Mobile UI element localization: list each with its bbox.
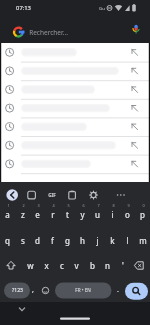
staticText: 9 <box>127 203 130 208</box>
staticText: 7 <box>97 203 100 208</box>
staticText: s <box>21 235 25 246</box>
button[interactable]: a <box>0 206 15 222</box>
button[interactable] <box>65 187 79 203</box>
button[interactable]: m <box>135 232 150 248</box>
staticText: q <box>5 235 10 246</box>
button[interactable]: n <box>100 257 115 273</box>
staticText: e <box>35 209 40 220</box>
button[interactable]: e <box>30 206 45 222</box>
button[interactable] <box>0 80 150 99</box>
button[interactable]: g <box>60 232 75 248</box>
button[interactable] <box>0 99 150 118</box>
staticText: GIF <box>48 192 56 198</box>
button[interactable]: k <box>105 232 120 248</box>
button[interactable] <box>58 313 92 323</box>
button[interactable] <box>86 187 101 203</box>
staticText: ' <box>122 260 124 271</box>
staticText: x <box>44 260 49 271</box>
staticText: ?123 <box>12 287 23 294</box>
staticText: , <box>32 285 34 295</box>
staticText: l <box>126 235 129 246</box>
button[interactable]: u <box>90 206 105 222</box>
staticText: u <box>95 209 100 220</box>
staticText: y <box>80 209 85 220</box>
button[interactable] <box>124 280 149 301</box>
staticText: m <box>139 235 147 246</box>
staticText: a <box>5 209 10 220</box>
staticText: 4 <box>52 203 55 208</box>
button[interactable]: d <box>30 232 45 248</box>
button[interactable]: f <box>45 232 60 248</box>
button[interactable]: j <box>90 232 105 248</box>
staticText: h <box>80 235 85 246</box>
staticText: 5 <box>67 203 70 208</box>
button[interactable] <box>129 252 150 278</box>
staticText: g <box>65 235 70 246</box>
button[interactable]: . <box>113 283 123 297</box>
staticText: j <box>96 235 99 246</box>
button[interactable]: p <box>135 206 150 222</box>
button[interactable] <box>0 62 150 81</box>
staticText: w <box>27 260 34 271</box>
staticText: i <box>111 209 114 220</box>
button[interactable]: x <box>39 257 54 273</box>
staticText: t <box>66 209 69 220</box>
button[interactable]: b <box>85 257 100 273</box>
staticText: d <box>35 235 40 246</box>
staticText: FR • EN <box>75 287 91 293</box>
button[interactable]: GIF <box>43 190 61 200</box>
button[interactable] <box>0 117 150 136</box>
button[interactable]: r <box>45 206 60 222</box>
button[interactable] <box>0 252 22 278</box>
button[interactable] <box>4 187 21 203</box>
button[interactable]: v <box>69 257 84 273</box>
button[interactable]: q <box>0 232 15 248</box>
staticText: v <box>74 260 79 271</box>
staticText: 2 <box>22 203 25 208</box>
button[interactable]: l <box>120 232 135 248</box>
staticText: c <box>60 260 64 271</box>
button[interactable] <box>55 280 112 300</box>
button[interactable]: Rechercher... <box>26 26 71 38</box>
button[interactable]: y <box>75 206 90 222</box>
staticText: p <box>140 209 145 220</box>
button[interactable] <box>0 136 150 155</box>
staticText: 6 <box>82 203 85 208</box>
button[interactable] <box>38 280 53 300</box>
staticText: b <box>90 260 95 271</box>
button[interactable]: i <box>105 206 120 222</box>
button[interactable]: ' <box>115 257 130 273</box>
staticText: f <box>51 235 54 246</box>
staticText: r <box>51 209 55 220</box>
button[interactable]: h <box>75 232 90 248</box>
staticText: z <box>21 209 25 220</box>
button[interactable]: s <box>15 232 30 248</box>
button[interactable] <box>25 187 39 203</box>
staticText: . <box>117 285 119 295</box>
staticText: o <box>125 209 130 220</box>
staticText: Rechercher... <box>29 28 68 37</box>
staticText: 8 <box>112 203 115 208</box>
staticText: k <box>110 235 115 246</box>
button[interactable] <box>0 155 150 174</box>
button[interactable]: t <box>60 206 75 222</box>
button[interactable]: w <box>23 257 38 273</box>
button[interactable] <box>112 187 130 203</box>
button[interactable]: ?123 <box>4 283 30 297</box>
button[interactable] <box>0 43 150 62</box>
button[interactable]: z <box>15 206 30 222</box>
staticText: n <box>105 260 110 271</box>
button[interactable]: o <box>120 206 135 222</box>
staticText: 07:13 <box>16 4 31 12</box>
button[interactable] <box>12 303 32 317</box>
staticText: 0 <box>142 203 145 208</box>
staticText: Gu <box>99 5 105 11</box>
button[interactable]: c <box>54 257 69 273</box>
button[interactable]: , <box>28 283 38 297</box>
button[interactable] <box>128 20 146 40</box>
staticText: 3 <box>37 203 40 208</box>
staticText: 1 <box>7 203 10 208</box>
